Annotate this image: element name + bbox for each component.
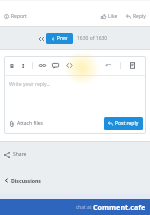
staticText: Report [11,13,27,20]
button[interactable]: Quote [50,60,61,71]
button[interactable]: Post reply [104,117,143,130]
button[interactable]: Report [2,11,29,22]
button[interactable]: Italic [18,60,29,71]
staticText: Share [13,151,27,158]
staticText: B [10,62,14,70]
staticText: I [22,62,25,70]
button[interactable]: Like [99,11,120,22]
button[interactable]: Bold [6,60,17,71]
button[interactable]: Prev [46,33,73,44]
button[interactable]: Preview [127,60,138,71]
staticText: Post reply [115,120,139,127]
button[interactable]: First page [36,34,45,43]
button[interactable]: Share [0,149,31,160]
button[interactable]: Reply [124,11,148,22]
button[interactable]: Code [64,60,75,71]
button[interactable]: Link [37,60,48,71]
staticText: Reply [133,13,146,20]
button[interactable]: Attach files [7,118,45,129]
button[interactable]: Discussions [0,175,45,186]
button[interactable]: Write your reply... [4,76,146,112]
staticText: Like [108,13,118,20]
staticText: Write your reply... [9,81,51,88]
staticText: Comment.cafe [93,202,146,212]
staticText: Prev [57,35,68,42]
staticText: chat at [76,204,93,211]
staticText: 1630 of 1630 [77,35,108,42]
staticText: Attach files [17,120,43,127]
staticText: Discussions [11,177,41,184]
button[interactable]: Undo [103,60,114,71]
